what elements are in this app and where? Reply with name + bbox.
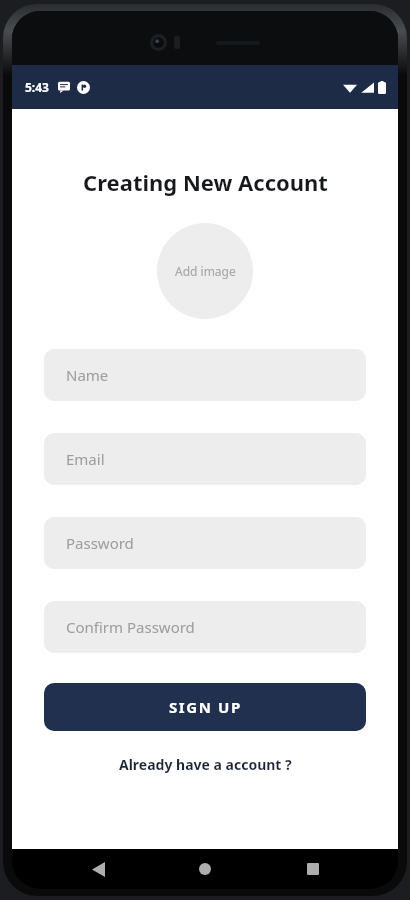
staticText: Creating New Account xyxy=(83,167,328,197)
staticText: Password xyxy=(66,533,134,553)
staticText: Already have a account ? xyxy=(119,755,292,774)
staticText: Name xyxy=(66,365,109,385)
button[interactable]: Name xyxy=(44,349,366,401)
staticText: 5:43 xyxy=(25,79,49,95)
staticText: Add image xyxy=(175,263,236,279)
button[interactable]: Back xyxy=(76,849,120,889)
button[interactable]: Confirm Password xyxy=(44,601,366,653)
button[interactable]: Home xyxy=(183,849,227,889)
button[interactable]: Email xyxy=(44,433,366,485)
staticText: Email xyxy=(66,449,105,469)
button[interactable]: Password xyxy=(44,517,366,569)
staticText: SIGN UP xyxy=(169,697,242,717)
staticText: Confirm Password xyxy=(66,617,195,637)
button[interactable]: Already have a account ? xyxy=(113,753,298,776)
button[interactable]: Recent apps xyxy=(291,849,335,889)
button[interactable]: SIGN UP xyxy=(44,683,366,731)
button[interactable]: Add image xyxy=(157,223,253,319)
